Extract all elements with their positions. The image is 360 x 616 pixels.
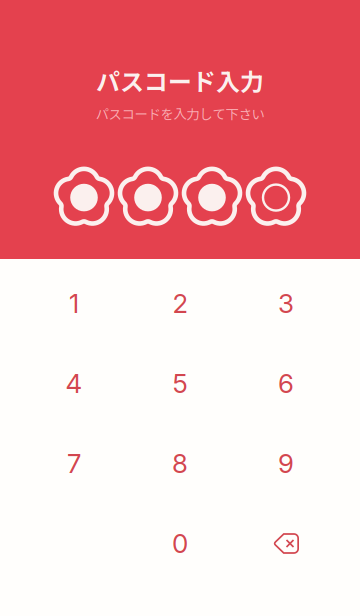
staticText: 1 <box>69 288 79 319</box>
staticText: パスコード入力 <box>96 63 264 98</box>
staticText: 4 <box>65 368 82 399</box>
button[interactable]: 2 <box>127 263 233 343</box>
staticText: 8 <box>172 448 188 479</box>
button[interactable]: 1 <box>21 263 127 343</box>
button[interactable]: 6 <box>233 343 339 423</box>
staticText: 6 <box>278 368 294 399</box>
button[interactable]: 3 <box>233 263 339 343</box>
button[interactable]: 7 <box>21 423 127 503</box>
staticText: 3 <box>278 288 294 319</box>
button[interactable]: 9 <box>233 423 339 503</box>
button[interactable]: 4 <box>21 343 127 423</box>
button[interactable]: 8 <box>127 423 233 503</box>
staticText: 9 <box>278 448 294 479</box>
staticText: 7 <box>67 448 81 479</box>
staticText: パスコードを入力して下さい <box>95 104 264 123</box>
staticText: 0 <box>172 528 188 559</box>
button[interactable]: 5 <box>127 343 233 423</box>
staticText: 2 <box>172 288 187 319</box>
staticText: 5 <box>172 368 187 399</box>
button[interactable]: Delete <box>233 503 339 583</box>
button[interactable]: 0 <box>127 503 233 583</box>
